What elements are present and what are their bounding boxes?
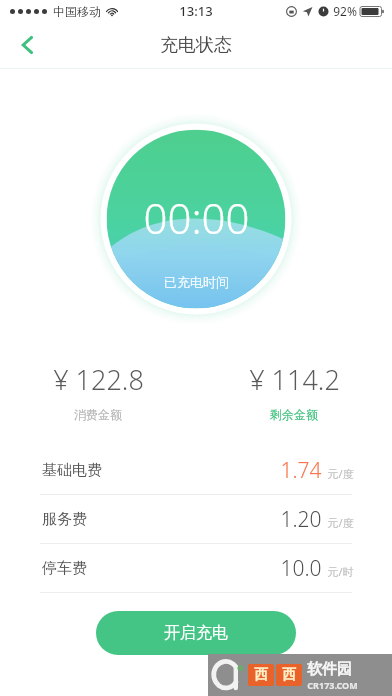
staticText: 已充电时间	[164, 274, 229, 290]
staticText: 92%	[333, 3, 357, 19]
staticText: 元/时	[327, 564, 354, 579]
staticText: 1.74	[280, 456, 322, 485]
button[interactable]: 服务费	[0, 495, 392, 543]
staticText: 西	[282, 666, 296, 684]
staticText: 元/度	[327, 515, 354, 530]
staticText: 停车费	[42, 559, 87, 578]
staticText: 基础电费	[42, 461, 102, 480]
staticText: 开启充电	[164, 623, 228, 643]
staticText: 西	[254, 666, 268, 684]
staticText: 10.0	[280, 554, 322, 583]
button[interactable]: ¥ 114.2	[196, 361, 392, 422]
staticText: 软件园	[307, 660, 352, 679]
staticText: 服务费	[42, 510, 87, 529]
button[interactable]: ¥ 122.8	[0, 361, 196, 422]
staticText: ¥ 122.8	[53, 361, 144, 398]
staticText: 中国移动	[53, 4, 101, 19]
button[interactable]: 停车费	[0, 544, 392, 592]
button[interactable]: 开启充电	[96, 611, 296, 655]
button[interactable]: 基础电费	[0, 446, 392, 494]
staticText: 00:00	[143, 189, 250, 246]
staticText: 消费金额	[74, 407, 122, 422]
button[interactable]: Back	[6, 23, 50, 67]
staticText: 1.20	[280, 505, 322, 534]
staticText: ¥ 114.2	[249, 361, 340, 398]
staticText: 13:13	[179, 2, 213, 20]
staticText: 剩余金额	[270, 407, 318, 422]
staticText: 元/度	[327, 466, 354, 481]
staticText: CR173.COM	[307, 679, 358, 691]
staticText: 充电状态	[160, 34, 232, 57]
